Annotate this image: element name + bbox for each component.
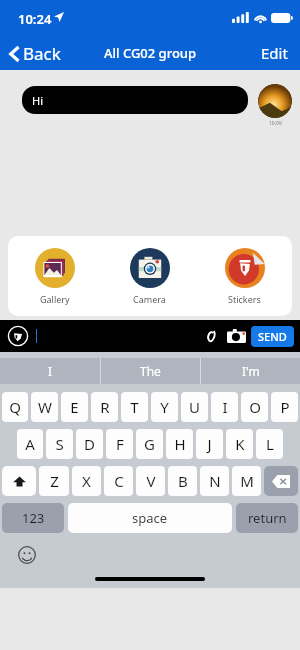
button[interactable]: I'm xyxy=(201,358,300,384)
staticText: W xyxy=(38,397,52,417)
button[interactable]: SEND xyxy=(251,326,294,347)
button[interactable]: Backspace xyxy=(264,466,298,496)
button[interactable]: R xyxy=(91,392,118,422)
button[interactable]: 123 xyxy=(2,503,64,533)
staticText: E xyxy=(70,397,79,417)
staticText: G xyxy=(144,434,155,454)
button[interactable]: L xyxy=(256,429,283,459)
button[interactable]: I xyxy=(211,392,238,422)
staticText: All CG02 group xyxy=(104,44,197,62)
staticText: I xyxy=(48,363,53,379)
staticText: S xyxy=(55,434,64,454)
staticText: Gallery xyxy=(40,293,70,305)
button[interactable]: Hi xyxy=(22,86,248,114)
staticText: return xyxy=(248,509,287,527)
button[interactable]: H xyxy=(166,429,193,459)
staticText: M xyxy=(240,471,254,491)
button[interactable]: I xyxy=(0,358,100,384)
staticText: B xyxy=(178,471,188,491)
button[interactable]: Gallery xyxy=(8,240,102,313)
button[interactable]: Take photo xyxy=(224,324,248,348)
button[interactable]: Camera xyxy=(102,240,197,313)
staticText: U xyxy=(189,397,200,417)
staticText: Q xyxy=(9,397,21,417)
button[interactable]: Q xyxy=(2,392,28,422)
button[interactable]: J xyxy=(196,429,223,459)
button[interactable]: Sender avatar xyxy=(258,84,292,118)
staticText: C xyxy=(114,471,124,491)
button[interactable]: space xyxy=(68,503,232,533)
staticText: D xyxy=(84,434,95,454)
staticText: I xyxy=(222,397,228,417)
button[interactable]: X xyxy=(72,466,101,496)
button[interactable]: Attach file xyxy=(199,325,221,347)
button[interactable]: T xyxy=(121,392,148,422)
button[interactable]: Stickers xyxy=(197,240,292,313)
staticText: The xyxy=(140,363,161,379)
staticText: T xyxy=(130,397,139,417)
staticText: J xyxy=(207,434,212,454)
button[interactable]: A xyxy=(17,429,43,459)
button[interactable]: P xyxy=(271,392,298,422)
staticText: space xyxy=(132,509,168,527)
staticText: Y xyxy=(160,397,169,417)
staticText: F xyxy=(116,434,124,454)
button[interactable]: Z xyxy=(39,466,69,496)
staticText: Edit xyxy=(261,43,288,63)
staticText: R xyxy=(100,397,110,417)
staticText: 10:09 xyxy=(269,120,282,127)
button[interactable]: Y xyxy=(151,392,178,422)
staticText: Back xyxy=(23,42,61,65)
button[interactable]: U xyxy=(181,392,208,422)
staticText: 123 xyxy=(22,509,45,527)
staticText: Camera xyxy=(133,293,166,305)
button[interactable]: F xyxy=(106,429,133,459)
button[interactable]: B xyxy=(168,466,197,496)
button[interactable]: return xyxy=(236,503,298,533)
staticText: Z xyxy=(50,471,59,491)
button[interactable]: C xyxy=(104,466,133,496)
button[interactable]: W xyxy=(31,392,58,422)
button[interactable]: G xyxy=(136,429,163,459)
staticText: L xyxy=(266,434,274,454)
staticText: Hi xyxy=(32,93,43,108)
button[interactable]: N xyxy=(200,466,229,496)
button[interactable]: S xyxy=(46,429,73,459)
button[interactable]: Profile xyxy=(8,326,28,346)
staticText: I'm xyxy=(242,363,260,379)
staticText: X xyxy=(82,471,91,491)
button[interactable]: M xyxy=(232,466,261,496)
button[interactable]: O xyxy=(241,392,268,422)
staticText: Stickers xyxy=(228,293,261,305)
staticText: O xyxy=(249,397,261,417)
staticText: P xyxy=(280,397,290,417)
button[interactable]: D xyxy=(76,429,103,459)
button[interactable]: K xyxy=(226,429,253,459)
staticText: 10:24 xyxy=(18,10,52,28)
staticText: N xyxy=(209,471,221,491)
staticText: V xyxy=(146,471,156,491)
staticText: H xyxy=(174,434,186,454)
button[interactable]: Back xyxy=(0,38,71,69)
button[interactable]: Emoji xyxy=(18,546,36,564)
button[interactable]: E xyxy=(61,392,88,422)
button[interactable]: Edit xyxy=(249,37,300,69)
button[interactable]: The xyxy=(101,358,200,384)
staticText: K xyxy=(235,434,245,454)
button[interactable]: Shift xyxy=(2,466,36,496)
staticText: A xyxy=(25,434,35,454)
staticText: SEND xyxy=(258,329,287,344)
button[interactable]: V xyxy=(136,466,165,496)
